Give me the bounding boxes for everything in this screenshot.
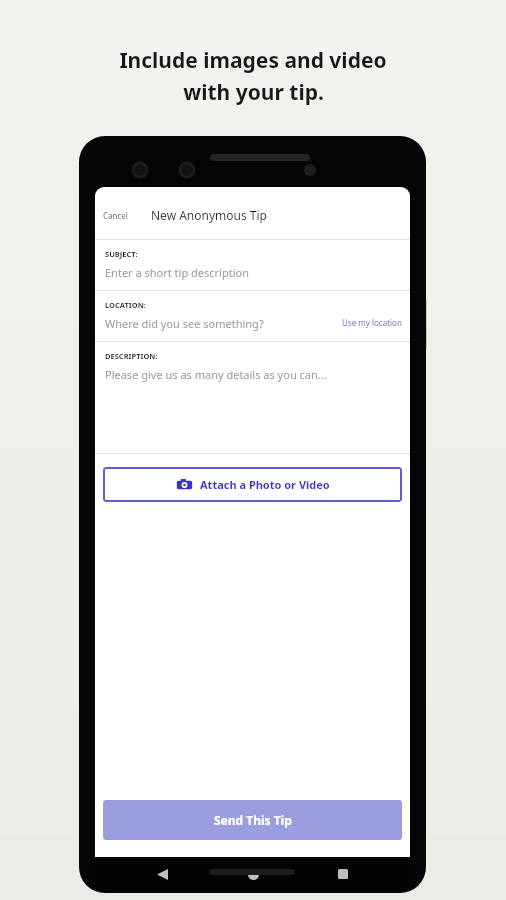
staticText: New Anonymous Tip	[151, 207, 267, 223]
staticText: Where did you see something?	[105, 316, 264, 331]
staticText: DESCRIPTION:	[105, 351, 158, 361]
button[interactable]: Attach a Photo or Video	[103, 467, 402, 502]
staticText: Send This Tip	[214, 812, 292, 828]
button[interactable]: Home	[238, 859, 268, 889]
button[interactable]: Use my location	[334, 313, 410, 332]
button[interactable]: Recent apps	[328, 859, 358, 889]
staticText: SUBJECT:	[105, 249, 138, 259]
staticText: LOCATION:	[105, 300, 146, 310]
button[interactable]: SUBJECT:	[95, 240, 410, 290]
button[interactable]: LOCATION:	[95, 291, 410, 341]
button[interactable]: DESCRIPTION:	[95, 342, 410, 453]
staticText: Attach a Photo or Video	[200, 477, 330, 492]
button[interactable]: Back	[147, 859, 177, 889]
staticText: with your tip.	[183, 78, 324, 107]
staticText: Enter a short tip description	[105, 265, 249, 280]
staticText: Please give us as many details as you ca…	[105, 367, 327, 382]
button[interactable]: Send This Tip	[103, 800, 402, 840]
staticText: Include images and video	[119, 46, 387, 75]
staticText: Use my location	[342, 317, 402, 328]
button[interactable]: Cancel	[95, 204, 136, 227]
staticText: Cancel	[103, 210, 128, 221]
